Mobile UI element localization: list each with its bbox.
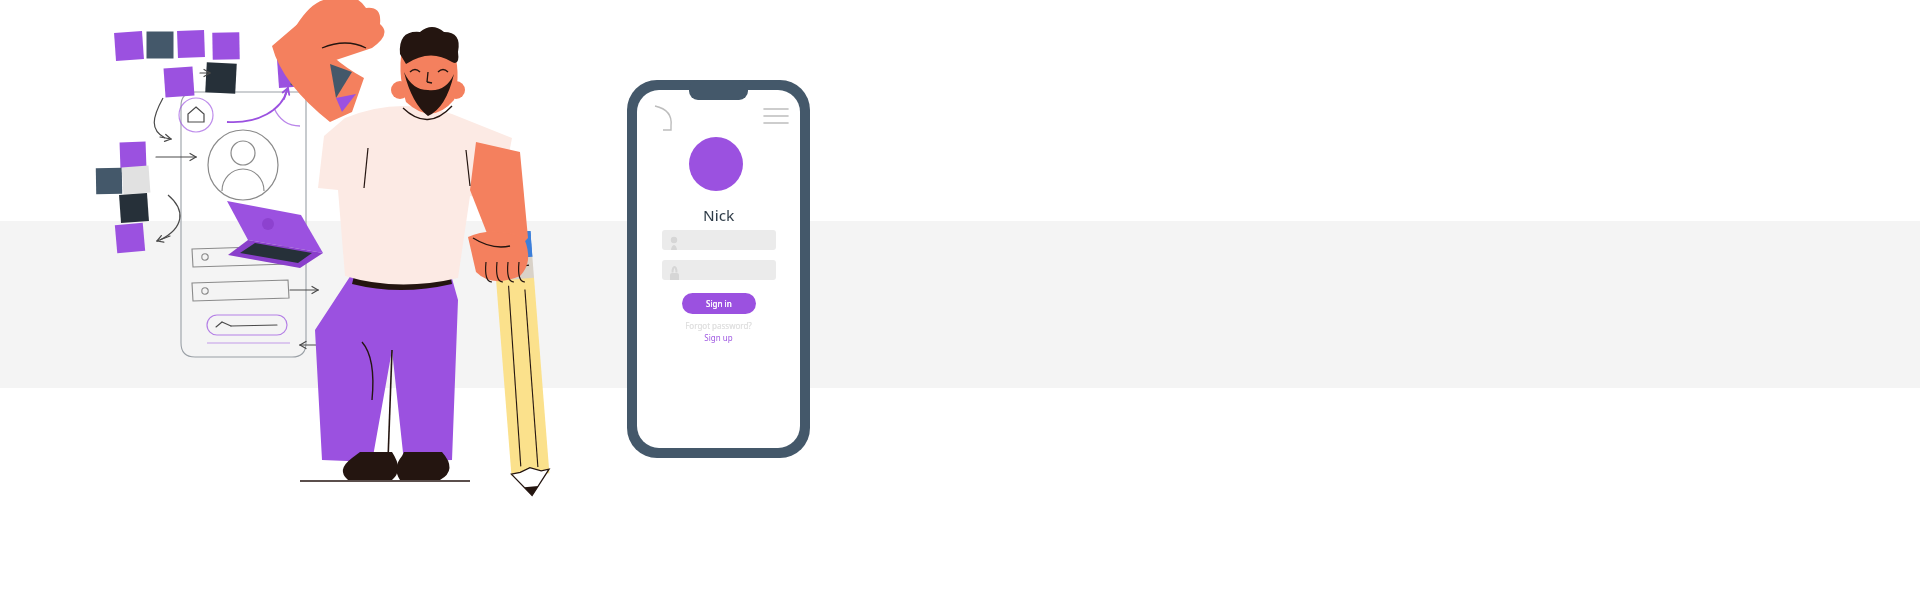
staticText: Forgot password? [685,320,752,331]
button[interactable]: Forgot password? [637,320,800,331]
button[interactable] [689,137,743,191]
button[interactable]: Menu [762,105,780,119]
staticText: Sign up [704,332,733,343]
button[interactable]: Sign in [682,293,756,314]
staticText: Sign in [706,298,732,309]
button[interactable] [662,230,776,250]
button[interactable]: Sign up [637,332,800,343]
button[interactable] [662,260,776,280]
button[interactable]: Back [653,104,669,120]
staticText: Nick [703,205,735,225]
